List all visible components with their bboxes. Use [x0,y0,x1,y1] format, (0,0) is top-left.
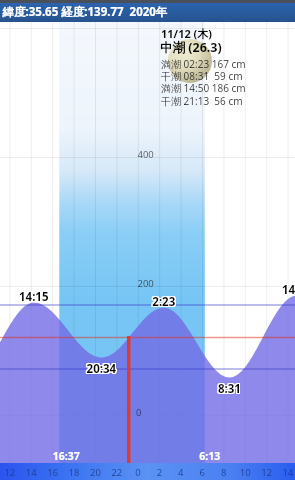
button[interactable]: Tide chart [0,0,295,480]
